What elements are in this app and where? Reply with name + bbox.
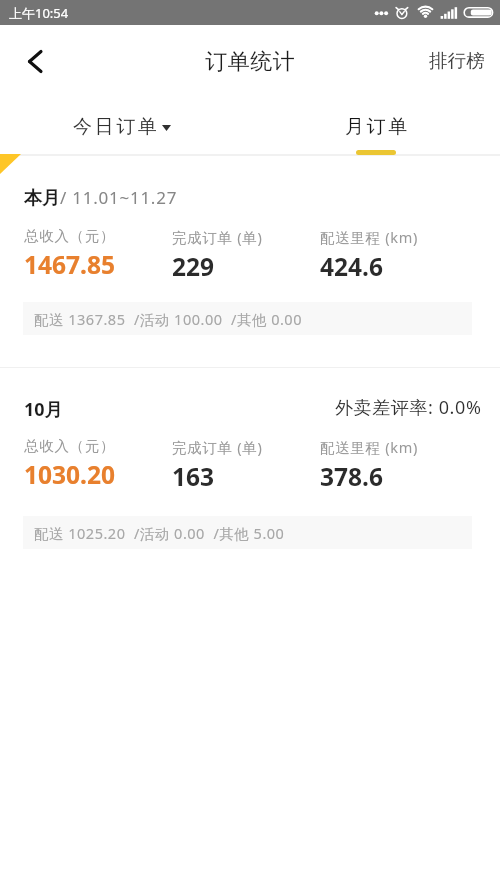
staticText: 1467.85 bbox=[24, 248, 115, 281]
staticText: 今日订单 bbox=[73, 115, 160, 139]
button[interactable]: 排行榜 bbox=[413, 36, 500, 87]
staticText: 配送里程 (km) bbox=[320, 437, 419, 457]
staticText: 378.6 bbox=[320, 460, 383, 493]
staticText: 163 bbox=[172, 460, 215, 493]
staticText: 10月 bbox=[24, 397, 63, 418]
staticText: 配送 1367.85 /活动 100.00 /其他 0.00 bbox=[34, 309, 302, 329]
button[interactable]: Back bbox=[0, 33, 56, 89]
staticText: 完成订单 (单) bbox=[172, 437, 263, 457]
button[interactable]: 月订单 bbox=[250, 97, 500, 154]
staticText: 配送里程 (km) bbox=[320, 227, 419, 247]
staticText: 424.6 bbox=[320, 250, 383, 283]
staticText: 上午10:54 bbox=[9, 4, 69, 22]
staticText: 月订单 bbox=[345, 115, 411, 139]
staticText: 229 bbox=[172, 250, 215, 283]
button[interactable]: 今日订单 bbox=[0, 97, 250, 154]
staticText: 外卖差评率: 0.0% bbox=[335, 395, 482, 416]
staticText: 订单统计 bbox=[205, 48, 296, 76]
staticText: 完成订单 (单) bbox=[172, 227, 263, 247]
staticText: 排行榜 bbox=[429, 49, 485, 72]
staticText: 本月 bbox=[24, 187, 60, 208]
staticText: 总收入（元） bbox=[24, 437, 116, 455]
staticText: 1030.20 bbox=[24, 458, 115, 491]
staticText: 配送 1025.20 /活动 0.00 /其他 5.00 bbox=[34, 523, 285, 543]
staticText: / 11.01~11.27 bbox=[60, 186, 178, 207]
staticText: 总收入（元） bbox=[24, 227, 116, 245]
